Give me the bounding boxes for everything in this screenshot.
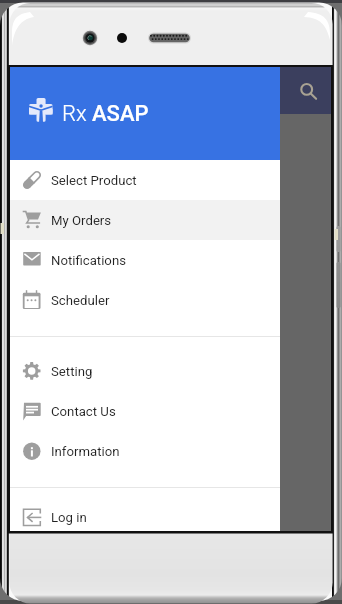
button[interactable]: Notifications xyxy=(10,240,280,280)
staticText: ASAP xyxy=(92,101,149,127)
button[interactable]: Information xyxy=(10,431,280,471)
staticText: Setting xyxy=(51,364,93,379)
staticText: Rx xyxy=(62,101,87,127)
staticText: Scheduler xyxy=(51,293,110,308)
button[interactable]: Scheduler xyxy=(10,280,280,320)
staticText: Information xyxy=(51,444,120,459)
staticText: Log in xyxy=(51,510,87,525)
staticText: Notifications xyxy=(51,253,126,268)
button[interactable]: Contact Us xyxy=(10,391,280,431)
button[interactable]: My Orders xyxy=(10,200,280,240)
button[interactable]: Log in xyxy=(10,503,280,531)
staticText: Contact Us xyxy=(51,404,116,419)
button[interactable]: Setting xyxy=(10,351,280,391)
button[interactable]: Select Product xyxy=(10,160,280,200)
staticText: Select Product xyxy=(51,173,137,188)
staticText: My Orders xyxy=(51,213,112,228)
button[interactable]: Search xyxy=(293,77,321,105)
